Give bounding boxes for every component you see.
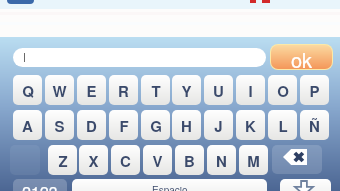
button[interactable]: F xyxy=(109,110,138,140)
button[interactable]: L xyxy=(268,110,297,140)
button[interactable]: Hide keyboard xyxy=(280,179,331,191)
button[interactable] xyxy=(72,179,267,191)
button[interactable]: A xyxy=(13,110,42,140)
button[interactable]: Y xyxy=(172,75,201,105)
button[interactable]: O xyxy=(268,75,297,105)
staticText: Espacio xyxy=(152,183,188,191)
button[interactable]: D xyxy=(77,110,106,140)
button[interactable]: T xyxy=(141,75,170,105)
staticText: N xyxy=(216,150,227,171)
button[interactable]: U xyxy=(204,75,233,105)
staticText: ok xyxy=(291,45,313,69)
staticText: O xyxy=(277,80,289,101)
button[interactable]: K xyxy=(236,110,265,140)
button[interactable]: M xyxy=(239,145,268,175)
button[interactable]: B xyxy=(175,145,204,175)
staticText: V xyxy=(152,150,163,171)
button[interactable]: N xyxy=(207,145,236,175)
button[interactable]: P xyxy=(300,75,329,105)
staticText: X xyxy=(88,150,99,171)
staticText: K xyxy=(245,115,256,136)
staticText: B xyxy=(184,150,195,171)
staticText: G xyxy=(150,115,162,136)
button[interactable]: X xyxy=(79,145,108,175)
staticText: J xyxy=(214,115,223,136)
staticText: W xyxy=(52,80,67,101)
button[interactable]: G xyxy=(141,110,170,140)
staticText: M xyxy=(247,150,260,171)
button[interactable]: Z xyxy=(48,145,77,175)
button[interactable]: C xyxy=(111,145,140,175)
staticText: H xyxy=(181,115,192,136)
button[interactable]: S xyxy=(45,110,74,140)
button[interactable]: E xyxy=(77,75,106,105)
staticText: S xyxy=(54,115,65,136)
button[interactable]: Back xyxy=(7,0,34,4)
button[interactable]: Ñ xyxy=(300,110,329,140)
button[interactable]: ok xyxy=(271,45,332,69)
staticText: A xyxy=(22,115,33,136)
button[interactable]: R xyxy=(109,75,138,105)
button[interactable]: Q xyxy=(13,75,42,105)
button[interactable]: I xyxy=(236,75,265,105)
button[interactable]: J xyxy=(204,110,233,140)
staticText: P xyxy=(309,80,320,101)
staticText: T xyxy=(151,80,161,101)
staticText: C xyxy=(120,150,131,171)
staticText: 2123 xyxy=(22,180,58,191)
button[interactable]: Backspace xyxy=(272,145,322,174)
staticText: U xyxy=(213,80,224,101)
staticText: E xyxy=(86,80,97,101)
staticText: Q xyxy=(22,80,34,101)
staticText: D xyxy=(86,115,97,136)
staticText: Ñ xyxy=(309,115,320,136)
staticText: Z xyxy=(58,150,68,171)
button[interactable]: V xyxy=(143,145,172,175)
button[interactable]: H xyxy=(172,110,201,140)
staticText: Y xyxy=(181,80,192,101)
staticText: F xyxy=(119,115,129,136)
staticText: R xyxy=(118,80,129,101)
button[interactable] xyxy=(13,179,67,191)
button[interactable]: W xyxy=(45,75,74,105)
staticText: I xyxy=(248,80,253,101)
staticText: L xyxy=(278,115,288,136)
button[interactable] xyxy=(13,48,266,67)
button[interactable]: Shift xyxy=(10,145,40,175)
